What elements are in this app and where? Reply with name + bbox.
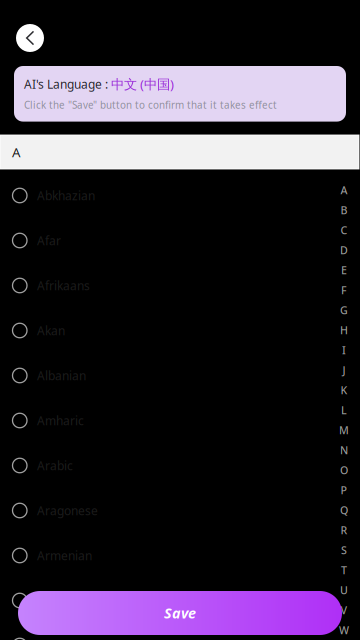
button[interactable]: V	[334, 600, 354, 620]
staticText: W	[339, 623, 349, 637]
staticText: Save	[164, 603, 196, 623]
button[interactable]: Assamese	[0, 578, 360, 623]
staticText: AI's Language :	[24, 76, 111, 92]
staticText: B	[340, 203, 347, 217]
staticText: Afar	[37, 232, 61, 249]
staticText: R	[340, 523, 347, 537]
staticText: K	[340, 383, 347, 397]
button[interactable]: Aragonese	[0, 488, 360, 533]
staticText: V	[340, 603, 347, 617]
staticText: D	[340, 243, 348, 257]
button[interactable]: F	[334, 280, 354, 300]
button[interactable]: G	[334, 300, 354, 320]
button[interactable]: Armenian	[0, 533, 360, 578]
staticText: A	[12, 143, 21, 161]
button[interactable]: N	[334, 440, 354, 460]
staticText: Albanian	[37, 367, 86, 384]
button[interactable]: T	[334, 560, 354, 580]
button[interactable]: R	[334, 520, 354, 540]
staticText: Arabic	[37, 457, 73, 474]
button[interactable]: Amharic	[0, 398, 360, 443]
staticText: Q	[340, 503, 348, 517]
button[interactable]: H	[334, 320, 354, 340]
button[interactable]: Akan	[0, 308, 360, 353]
button[interactable]: A	[334, 180, 354, 200]
staticText: E	[341, 263, 347, 277]
staticText: J	[342, 363, 345, 377]
staticText: Armenian	[37, 547, 92, 564]
staticText: I	[342, 343, 346, 357]
button[interactable]: K	[334, 380, 354, 400]
button[interactable]: B	[334, 200, 354, 220]
staticText: H	[340, 323, 348, 337]
button[interactable]: W	[334, 620, 354, 640]
button[interactable]: M	[334, 420, 354, 440]
button[interactable]: L	[334, 400, 354, 420]
button[interactable]: Q	[334, 500, 354, 520]
button[interactable]: Arabic	[0, 443, 360, 488]
button[interactable]: P	[334, 480, 354, 500]
button[interactable]: Asturian	[0, 623, 360, 640]
button[interactable]: Afar	[0, 218, 360, 263]
button[interactable]: Albanian	[0, 353, 360, 398]
button[interactable]: O	[334, 460, 354, 480]
staticText: G	[340, 303, 348, 317]
button[interactable]: J	[334, 360, 354, 380]
staticText: T	[341, 563, 347, 577]
staticText: U	[340, 583, 348, 597]
staticText: F	[341, 283, 347, 297]
staticText: Afrikaans	[37, 277, 90, 294]
staticText: S	[341, 543, 347, 557]
staticText: Abkhazian	[37, 187, 95, 204]
staticText: C	[340, 223, 347, 237]
staticText: M	[339, 423, 349, 437]
button[interactable]: Save	[18, 591, 342, 635]
staticText: Akan	[37, 322, 65, 339]
button[interactable]: S	[334, 540, 354, 560]
staticText: A	[340, 183, 347, 197]
staticText: O	[340, 463, 348, 477]
button[interactable]: U	[334, 580, 354, 600]
staticText: Assamese	[37, 592, 95, 609]
button[interactable]: Afrikaans	[0, 263, 360, 308]
button[interactable]: Abkhazian	[0, 173, 360, 218]
staticText: L	[341, 403, 347, 417]
button[interactable]: Back	[16, 24, 44, 52]
button[interactable]: I	[334, 340, 354, 360]
staticText: 中文 (中国)	[111, 75, 174, 93]
button[interactable]: D	[334, 240, 354, 260]
staticText: Aragonese	[37, 502, 98, 519]
staticText: N	[340, 443, 348, 457]
button[interactable]: E	[334, 260, 354, 280]
button[interactable]: C	[334, 220, 354, 240]
staticText: Click the "Save" button to confirm that …	[24, 98, 277, 112]
staticText: Amharic	[37, 412, 84, 429]
staticText: P	[340, 483, 347, 497]
